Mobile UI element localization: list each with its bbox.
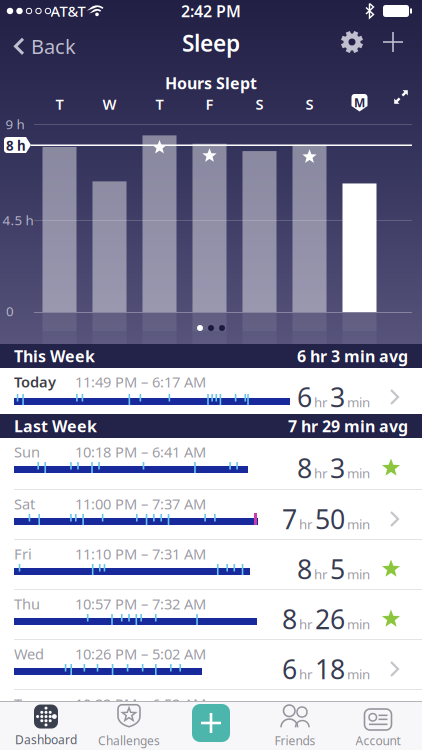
staticText: 7 hr 29 min avg [288, 415, 408, 437]
staticText: 8 [297, 450, 312, 486]
staticText: Wed [14, 644, 44, 663]
staticText: 3 [330, 450, 345, 486]
staticText: 7 [282, 501, 297, 537]
staticText: 11:49 PM – 6:17 AM [75, 372, 206, 391]
staticText: min [347, 464, 370, 482]
staticText: min [347, 515, 370, 533]
staticText: Today [14, 372, 56, 391]
staticText: 5 [330, 551, 345, 587]
staticText: Friends [274, 732, 315, 748]
staticText: 8 [282, 701, 297, 737]
staticText: 50 [315, 501, 345, 537]
staticText: hr [299, 515, 313, 533]
staticText: hr [314, 565, 328, 583]
staticText: S [255, 94, 263, 114]
staticText: Challenges [98, 732, 160, 748]
staticText: 26 [315, 601, 345, 637]
staticText: S [305, 94, 313, 114]
button[interactable]: Log [192, 704, 230, 742]
button[interactable]: Add sleep log [383, 32, 403, 52]
staticText: 6 [297, 379, 312, 415]
staticText: min [347, 393, 370, 411]
button[interactable]: Tue [0, 690, 422, 740]
staticText: 30 [315, 701, 345, 737]
staticText: This Week [14, 345, 95, 367]
staticText: T [155, 94, 163, 114]
button[interactable]: Fri [0, 540, 422, 590]
staticText: Tue [14, 694, 38, 713]
staticText: AT&T [50, 1, 85, 21]
staticText: Sat [14, 494, 35, 513]
staticText: 10:22 PM – 6:52 AM [75, 694, 206, 713]
button[interactable]: Dashboard [6, 702, 86, 750]
staticText: 8 [297, 551, 312, 587]
staticText: 6 [282, 651, 297, 687]
staticText: min [347, 615, 370, 633]
staticText: Dashboard [15, 731, 77, 747]
staticText: 2:42 PM [181, 0, 241, 22]
staticText: M [354, 94, 365, 110]
staticText: F [205, 94, 213, 114]
staticText: 6 hr 3 min avg [297, 345, 408, 367]
button[interactable]: Sat [0, 490, 422, 540]
button[interactable]: Thu [0, 590, 422, 640]
staticText: Sun [14, 442, 40, 461]
staticText: Back [31, 33, 76, 60]
button[interactable]: Settings [339, 29, 365, 55]
staticText: 9 h [5, 115, 24, 133]
staticText: 10:18 PM – 6:41 AM [75, 442, 206, 461]
staticText: 18 [315, 651, 345, 687]
button[interactable]: Expand chart [392, 88, 410, 106]
staticText: Fri [14, 544, 32, 563]
button[interactable]: Back [0, 33, 76, 60]
button[interactable]: Today [0, 368, 422, 414]
staticText: 3 [330, 379, 345, 415]
staticText: hr [299, 715, 313, 733]
staticText: 0 [6, 302, 14, 320]
button[interactable]: Sun [0, 438, 422, 490]
button[interactable]: Wed [0, 640, 422, 690]
staticText: Sleep [182, 28, 240, 58]
button[interactable]: Account [338, 702, 418, 750]
staticText: Thu [14, 594, 40, 613]
staticText: Last Week [14, 415, 97, 437]
staticText: min [347, 665, 370, 683]
staticText: 4.5 h [2, 211, 33, 229]
staticText: Hours Slept [165, 72, 257, 94]
staticText: 8 h [6, 137, 26, 154]
button[interactable]: Challenges [89, 702, 169, 750]
staticText: hr [314, 464, 328, 482]
staticText: 8 [282, 601, 297, 637]
staticText: 11:10 PM – 7:31 AM [75, 544, 206, 563]
staticText: Account [355, 732, 400, 748]
button[interactable]: Friends [255, 702, 335, 750]
staticText: T [55, 94, 63, 114]
staticText: 10:57 PM – 7:32 AM [75, 594, 206, 613]
staticText: hr [299, 615, 313, 633]
staticText: min [347, 565, 370, 583]
staticText: 10:26 PM – 5:02 AM [75, 644, 206, 663]
staticText: min [347, 715, 370, 733]
staticText: hr [314, 393, 328, 411]
staticText: 11:00 PM – 7:37 AM [75, 494, 206, 513]
staticText: hr [299, 665, 313, 683]
staticText: W [102, 94, 116, 114]
